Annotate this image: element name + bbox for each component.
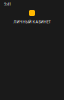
staticText: ЛИЧНЫЙ КАБИНЕТ bbox=[13, 19, 50, 24]
staticText: 9:41 bbox=[4, 1, 11, 7]
